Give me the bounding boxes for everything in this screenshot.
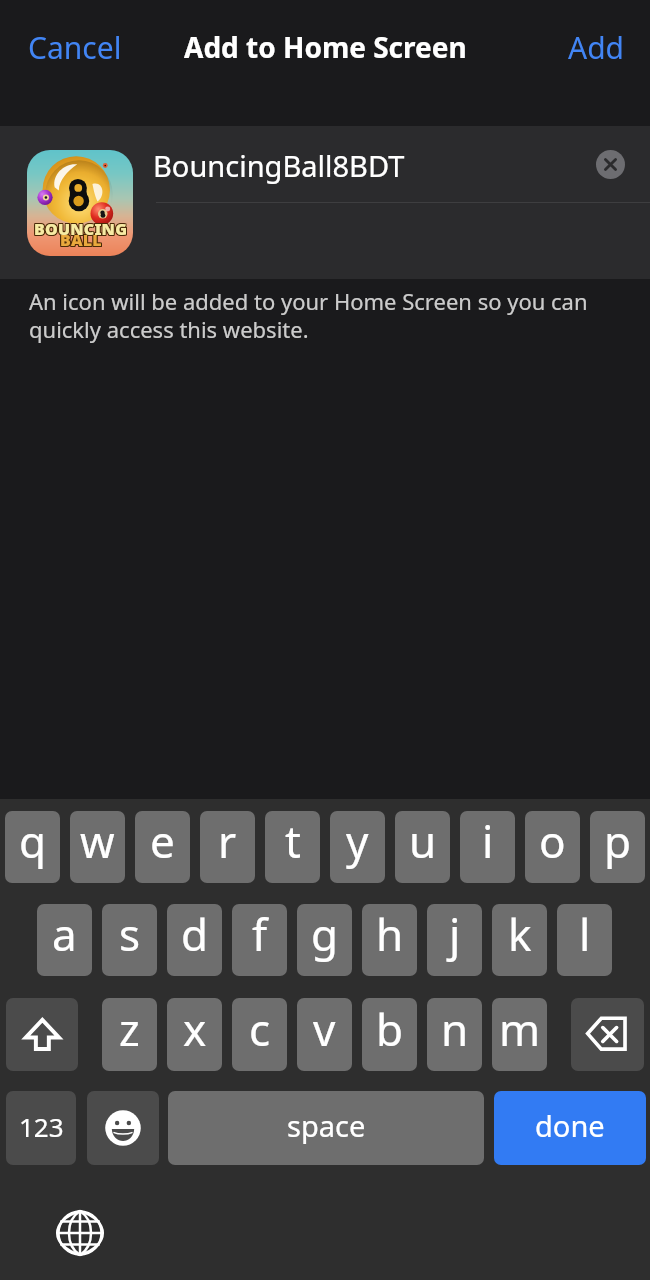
button[interactable]: e xyxy=(135,811,190,883)
staticText: l xyxy=(579,904,591,964)
staticText: c xyxy=(249,999,271,1059)
staticText: Add xyxy=(568,27,625,68)
staticText: u xyxy=(409,811,437,871)
staticText: BALL xyxy=(59,228,101,250)
button[interactable]: Backspace xyxy=(571,998,644,1071)
staticText: d xyxy=(181,904,209,964)
button[interactable]: i xyxy=(460,811,515,883)
staticText: BOUNCING xyxy=(33,217,127,239)
button[interactable]: g xyxy=(297,904,352,976)
staticText: BALL xyxy=(61,230,103,252)
staticText: BOUNCING xyxy=(33,219,127,241)
staticText: BALL xyxy=(60,230,102,252)
staticText: BALL xyxy=(60,228,102,250)
button[interactable]: Shift xyxy=(6,998,78,1071)
staticText: o xyxy=(539,811,566,871)
staticText: r xyxy=(218,811,237,871)
staticText: BALL xyxy=(60,229,102,251)
staticText: f xyxy=(252,904,268,964)
staticText: BOUNCING xyxy=(35,218,129,240)
button[interactable]: a xyxy=(37,904,92,976)
button[interactable]: Change keyboard language xyxy=(50,1203,109,1262)
staticText: x xyxy=(183,999,207,1059)
staticText: BOUNCING xyxy=(34,218,128,240)
staticText: BOUNCING xyxy=(34,219,128,241)
button[interactable]: x xyxy=(167,998,222,1071)
staticText: k xyxy=(508,904,532,964)
button[interactable]: p xyxy=(590,811,645,883)
staticText: BOUNCING xyxy=(35,219,129,241)
button[interactable]: k xyxy=(492,904,547,976)
staticText: y xyxy=(346,811,369,871)
staticText: q xyxy=(19,811,47,871)
button[interactable]: o xyxy=(525,811,580,883)
button[interactable]: c xyxy=(232,998,287,1071)
staticText: BOUNCING xyxy=(34,217,128,239)
button[interactable]: Emoji xyxy=(87,1091,159,1165)
button[interactable]: Clear text xyxy=(596,150,625,179)
staticText: t xyxy=(285,811,301,871)
staticText: v xyxy=(313,999,336,1059)
staticText: BALL xyxy=(61,228,103,250)
staticText: BouncingBall8BDT xyxy=(153,146,405,185)
button[interactable]: d xyxy=(167,904,222,976)
button[interactable]: r xyxy=(200,811,255,883)
button[interactable]: Home screen name xyxy=(153,140,583,202)
button[interactable]: done xyxy=(494,1091,646,1165)
button[interactable]: n xyxy=(427,998,482,1071)
staticText: h xyxy=(376,904,404,964)
button[interactable]: w xyxy=(70,811,125,883)
staticText: p xyxy=(604,811,632,871)
staticText: w xyxy=(80,811,115,871)
button[interactable]: u xyxy=(395,811,450,883)
staticText: b xyxy=(376,999,404,1059)
staticText: BALL xyxy=(59,230,101,252)
button[interactable]: space xyxy=(168,1091,484,1165)
staticText: done xyxy=(535,1106,605,1145)
staticText: e xyxy=(150,811,175,871)
staticText: 123 xyxy=(19,1109,64,1144)
staticText: n xyxy=(441,999,469,1059)
staticText: BOUNCING xyxy=(33,218,127,240)
button[interactable]: 123 xyxy=(6,1091,76,1165)
staticText: Cancel xyxy=(28,27,122,68)
button[interactable]: s xyxy=(102,904,157,976)
button[interactable]: v xyxy=(297,998,352,1071)
staticText: j xyxy=(449,904,461,964)
button[interactable]: l xyxy=(557,904,612,976)
staticText: space xyxy=(287,1106,366,1145)
staticText: i xyxy=(482,811,494,871)
staticText: BOUNCING xyxy=(35,217,129,239)
button[interactable]: y xyxy=(330,811,385,883)
staticText: m xyxy=(499,999,541,1059)
staticText: Add to Home Screen xyxy=(184,28,467,66)
button[interactable]: q xyxy=(5,811,60,883)
staticText: a xyxy=(52,904,77,964)
button[interactable]: j xyxy=(427,904,482,976)
staticText: g xyxy=(311,904,339,964)
staticText: BALL xyxy=(59,229,101,251)
button[interactable]: m xyxy=(492,998,547,1071)
button[interactable]: Add xyxy=(540,12,650,82)
button[interactable]: Cancel xyxy=(0,12,148,82)
button[interactable]: h xyxy=(362,904,417,976)
staticText: s xyxy=(119,904,141,964)
button[interactable]: t xyxy=(265,811,320,883)
staticText: BALL xyxy=(61,229,103,251)
button[interactable]: b xyxy=(362,998,417,1071)
button[interactable]: f xyxy=(232,904,287,976)
button[interactable]: z xyxy=(102,998,157,1071)
staticText: An icon will be added to your Home Scree… xyxy=(29,286,588,344)
staticText: z xyxy=(119,999,140,1059)
